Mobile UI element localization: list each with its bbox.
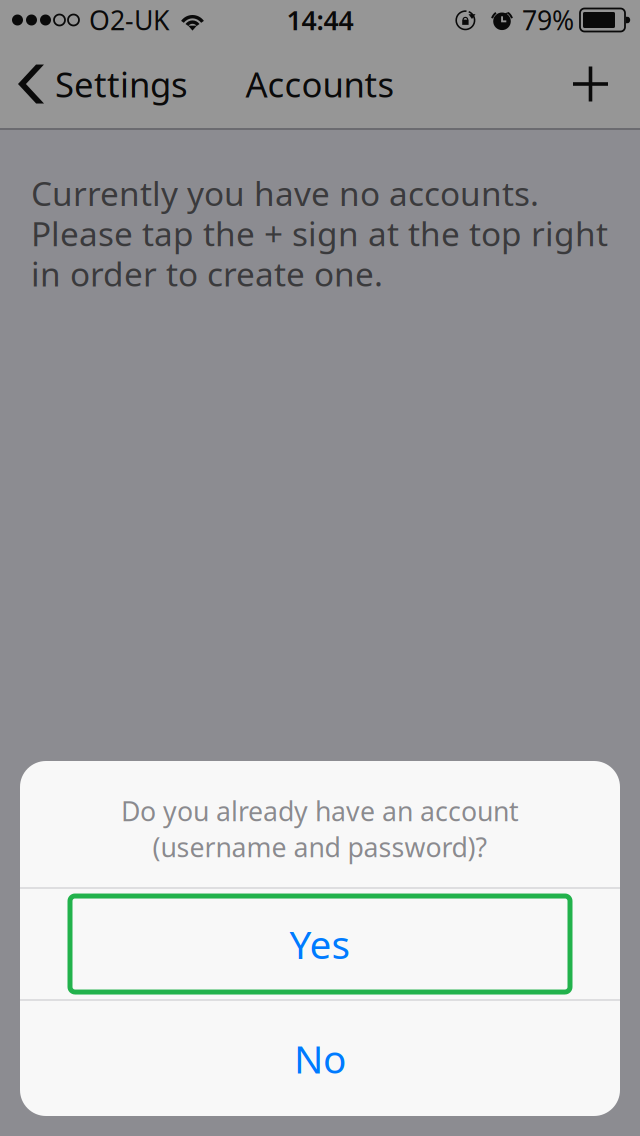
staticText: Currently you have no accounts. — [31, 171, 539, 215]
staticText: Yes — [289, 918, 350, 970]
button[interactable]: Add account — [553, 40, 640, 128]
staticText: Settings — [55, 61, 188, 107]
staticText: in order to create one. — [31, 251, 383, 296]
staticText: 79% — [522, 2, 574, 38]
staticText: Do you already have an account — [121, 793, 519, 829]
staticText: Please tap the + sign at the top right — [31, 211, 608, 256]
staticText: Accounts — [245, 61, 394, 107]
button[interactable]: Yes — [20, 889, 620, 999]
staticText: 14:44 — [286, 2, 353, 38]
staticText: No — [294, 1033, 346, 1084]
staticText: O2-UK — [89, 2, 170, 38]
staticText: (username and password)? — [152, 829, 487, 865]
button[interactable]: No — [20, 1001, 620, 1116]
button[interactable]: Settings — [0, 40, 202, 128]
